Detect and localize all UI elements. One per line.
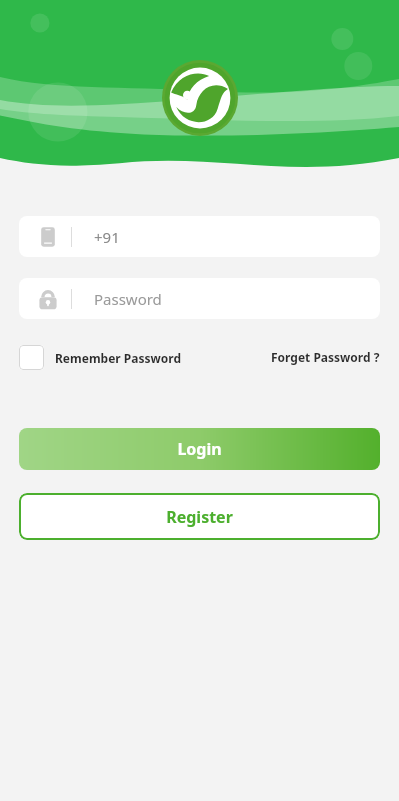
- staticText: Password: [94, 289, 162, 309]
- button[interactable]: Forget Password ?: [271, 349, 380, 365]
- button[interactable]: Register: [19, 493, 380, 540]
- staticText: +91: [94, 227, 120, 247]
- staticText: Login: [177, 438, 222, 460]
- staticText: Forget Password ?: [271, 349, 380, 365]
- staticText: Remember Password: [55, 350, 182, 366]
- button[interactable]: Password: [19, 278, 380, 319]
- button[interactable]: Phone number: [19, 216, 380, 257]
- button[interactable]: Remember Password: [19, 345, 186, 370]
- other: Password: [37, 288, 59, 310]
- button[interactable]: Login: [19, 428, 380, 470]
- other: Phone number: [37, 226, 59, 248]
- staticText: Register: [166, 506, 233, 528]
